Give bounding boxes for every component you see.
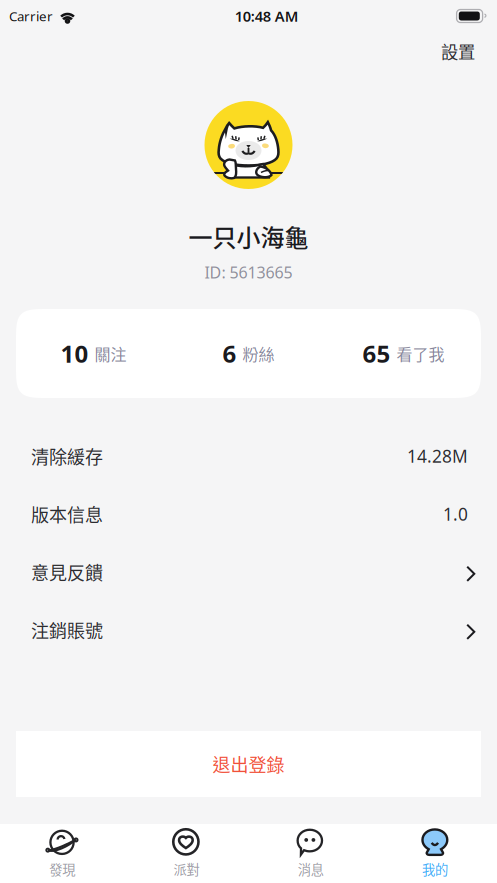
staticText: 關注 (94, 342, 126, 365)
button[interactable]: 10 (16, 309, 171, 398)
staticText: 我的 (422, 859, 448, 879)
staticText: 65 (362, 338, 390, 369)
button[interactable]: 派對 (124, 824, 248, 883)
staticText: 10 (60, 338, 88, 369)
button[interactable]: 注銷賬號 (0, 601, 497, 659)
staticText: 消息 (298, 859, 324, 879)
staticText: 10:48 AM (235, 6, 299, 26)
button[interactable]: 發現 (0, 824, 124, 883)
staticText: 6 (222, 338, 236, 369)
staticText: 14.28M (407, 444, 468, 467)
staticText: Carrier (9, 7, 53, 25)
button[interactable]: 版本信息 (0, 485, 497, 543)
staticText: 看了我 (396, 342, 444, 365)
staticText: 派對 (173, 859, 199, 879)
staticText: 粉絲 (242, 342, 274, 365)
staticText: 版本信息 (31, 501, 103, 527)
button[interactable]: 退出登錄 (16, 731, 481, 797)
staticText: 退出登錄 (212, 751, 284, 777)
button[interactable]: 我的 (373, 824, 497, 883)
button[interactable]: 清除緩存 (0, 427, 497, 485)
staticText: 1.0 (443, 502, 468, 525)
staticText: 清除緩存 (31, 443, 103, 469)
staticText: 一只小海龜 (188, 219, 308, 254)
staticText: ID: 5613665 (204, 262, 292, 283)
staticText: 注銷賬號 (31, 617, 103, 643)
button[interactable]: 設置 (425, 29, 497, 71)
button[interactable]: 65 (326, 309, 481, 398)
button[interactable]: 6 (171, 309, 326, 398)
button[interactable]: 意見反饋 (0, 543, 497, 601)
staticText: 意見反饋 (31, 559, 103, 585)
staticText: 發現 (49, 859, 75, 879)
button[interactable]: 消息 (248, 824, 373, 883)
staticText: 設置 (441, 38, 475, 64)
